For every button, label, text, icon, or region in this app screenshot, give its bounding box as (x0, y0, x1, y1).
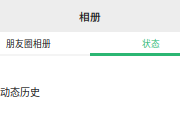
button[interactable]: 动态历史 (0, 56, 180, 99)
staticText: 动态历史 (0, 84, 40, 99)
button[interactable]: 朋友圈相册 (0, 32, 90, 53)
staticText: 朋友圈相册 (6, 37, 51, 49)
button[interactable]: 状态 (90, 32, 180, 53)
staticText: 状态 (142, 37, 160, 49)
staticText: 相册 (79, 8, 101, 24)
